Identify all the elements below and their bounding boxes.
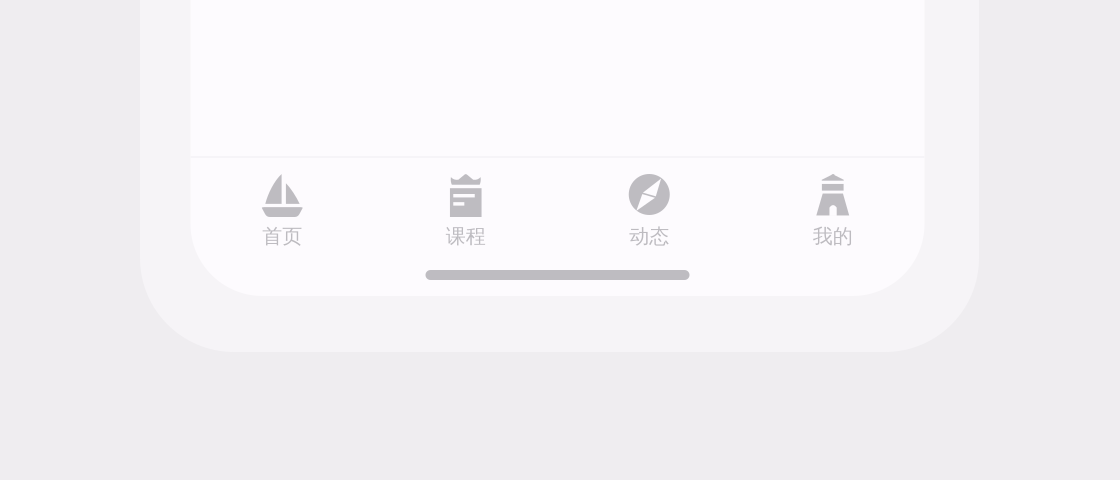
staticText: 课程	[446, 224, 486, 249]
button[interactable]: 首页	[190, 158, 374, 250]
staticText: 首页	[262, 224, 302, 249]
button[interactable]: 动态	[557, 158, 741, 250]
staticText: 我的	[813, 224, 853, 249]
button[interactable]: 我的	[741, 158, 924, 250]
staticText: 动态	[629, 224, 669, 249]
button[interactable]: 课程	[374, 158, 557, 250]
